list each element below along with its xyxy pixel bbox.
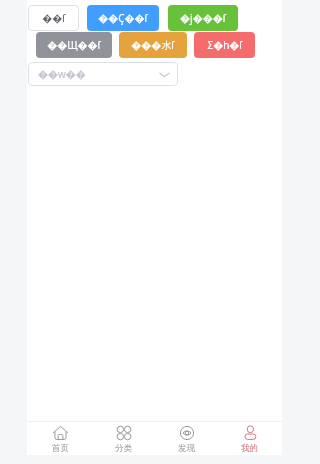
button[interactable]: ���水ſ [119,32,187,58]
other: Expand [159,69,170,80]
staticText: 首页 [52,443,69,454]
button[interactable]: Discover [155,422,218,454]
staticText: 分类 [115,443,132,454]
button[interactable]: ��Ç��ſ [87,5,159,31]
staticText: Σ�h�ſ [207,38,243,52]
staticText: ��w�� [38,67,86,81]
staticText: ��Ç��ſ [98,11,148,25]
staticText: ��ſ [42,11,66,25]
button[interactable]: ��Щ��ſ [36,32,112,58]
staticText: 发现 [178,443,195,454]
staticText: �ј���ſ [180,11,226,25]
staticText: 我的 [241,443,258,454]
button[interactable]: ��ſ [28,5,79,31]
button[interactable]: ��w�� [28,62,178,86]
button[interactable]: Mine [218,422,281,454]
button[interactable]: Home [28,422,92,454]
button[interactable]: �ј���ſ [168,5,238,31]
button[interactable]: Σ�h�ſ [194,32,255,58]
staticText: ���水ſ [131,38,175,52]
staticText: ��Щ��ſ [47,38,101,52]
button[interactable]: Categories [92,422,155,454]
